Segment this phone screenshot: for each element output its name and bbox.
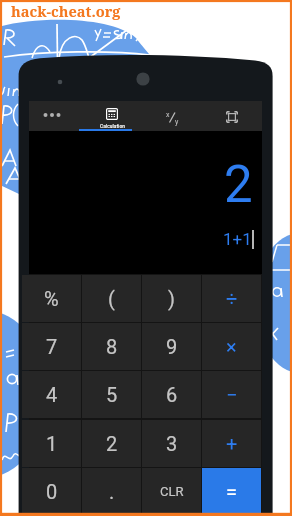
staticText: 5 <box>106 383 118 406</box>
staticText: = <box>226 480 237 503</box>
staticText: ÷ <box>226 287 238 310</box>
staticText: Calculation <box>100 123 125 130</box>
staticText: 1 <box>46 432 58 455</box>
button[interactable]: 7 <box>22 323 81 370</box>
button[interactable]: ) <box>142 275 201 322</box>
button[interactable]: = <box>202 468 261 515</box>
staticText: y <box>175 118 179 126</box>
staticText: CLR <box>160 484 184 499</box>
staticText: ) <box>168 287 175 310</box>
staticText: − <box>226 383 238 406</box>
button[interactable]: × <box>202 323 261 370</box>
button[interactable]: 2 <box>82 420 141 467</box>
staticText: + <box>226 432 238 455</box>
button[interactable]: 3 <box>142 420 201 467</box>
button[interactable]: ÷ <box>202 275 261 322</box>
button[interactable]: 5 <box>82 371 141 418</box>
button[interactable]: 0 <box>22 468 81 515</box>
staticText: 3 <box>166 432 178 455</box>
button[interactable]: ( <box>82 275 141 322</box>
staticText: 2 <box>224 155 253 215</box>
button[interactable]: . <box>82 468 141 515</box>
button[interactable]: 9 <box>142 323 201 370</box>
staticText: x <box>166 111 170 119</box>
button[interactable]: 8 <box>82 323 141 370</box>
button[interactable]: 4 <box>22 371 81 418</box>
staticText: hack-cheat.org <box>11 1 121 21</box>
staticText: 8 <box>106 335 118 358</box>
button[interactable]: More options <box>22 101 82 131</box>
button[interactable]: + <box>202 420 261 467</box>
button[interactable]: 6 <box>142 371 201 418</box>
staticText: 7 <box>46 335 58 358</box>
staticText: 0 <box>46 480 58 503</box>
staticText: % <box>44 287 59 310</box>
button[interactable]: Calculation <box>82 101 142 131</box>
button[interactable]: 1 <box>22 420 81 467</box>
button[interactable]: Scan <box>202 101 262 131</box>
staticText: ( <box>108 287 115 310</box>
staticText: 6 <box>166 383 178 406</box>
staticText: 4 <box>46 383 58 406</box>
staticText: 1+1 <box>223 229 252 249</box>
staticText: 9 <box>166 335 178 358</box>
staticText: × <box>226 335 237 358</box>
staticText: . <box>109 480 115 503</box>
button[interactable]: % <box>22 275 81 322</box>
button[interactable]: − <box>202 371 261 418</box>
button[interactable]: Fraction <box>142 101 202 131</box>
button[interactable]: CLR <box>142 468 201 515</box>
staticText: 2 <box>106 432 118 455</box>
